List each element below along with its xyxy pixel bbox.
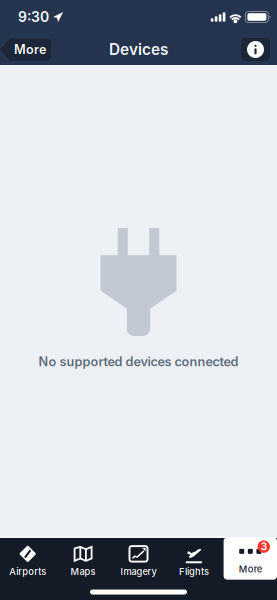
staticText: No supported devices connected [38,354,238,369]
staticText: Airports [9,566,46,577]
staticText: More [239,563,262,575]
staticText: Flights [179,566,209,577]
button[interactable]: Maps [55,540,111,582]
button[interactable]: More [224,537,277,580]
staticText: Imagery [120,566,156,577]
button[interactable]: More [0,38,51,60]
staticText: 9:30 [18,8,49,25]
button[interactable]: Imagery [111,540,166,582]
staticText: More [14,42,46,57]
staticText: Maps [71,566,96,577]
staticText: 3 [261,541,267,553]
button[interactable]: Airports [0,540,55,582]
staticText: Devices [109,40,168,59]
button[interactable]: Flights [166,540,222,582]
button[interactable]: Info [241,38,270,61]
